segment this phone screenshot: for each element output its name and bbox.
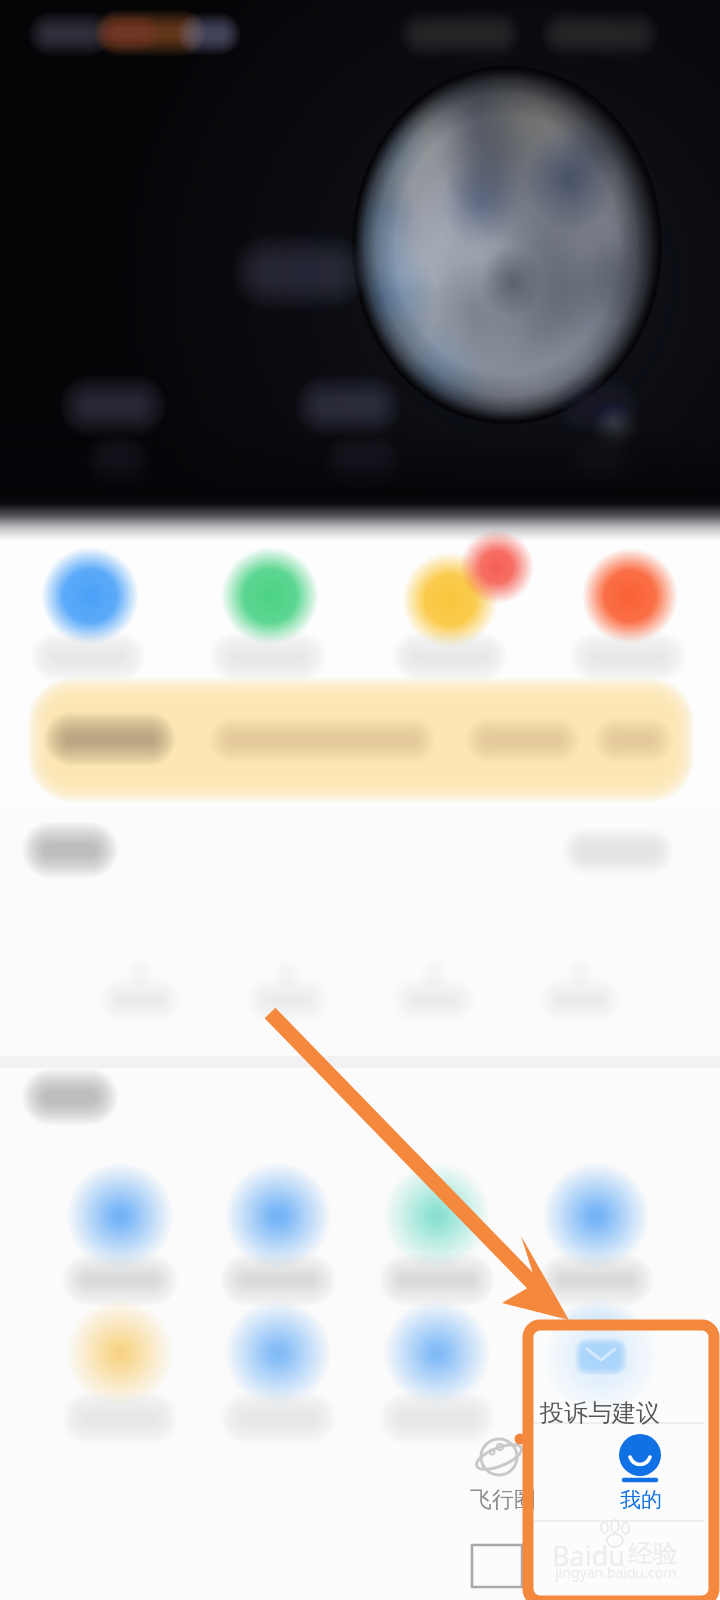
staticText: jingyan.baidu.com <box>555 1563 677 1582</box>
staticText: 飞行圈 <box>470 1486 536 1514</box>
button[interactable]: 投诉与建议 <box>540 1398 660 1428</box>
button[interactable]: 飞行圈 <box>470 1486 536 1514</box>
staticText: 投诉与建议 <box>540 1398 660 1428</box>
button[interactable]: 我的 <box>620 1487 662 1513</box>
staticText: 我的 <box>620 1487 662 1513</box>
staticText: Baidu <box>552 1537 625 1574</box>
staticText: 经验 <box>628 1538 678 1569</box>
